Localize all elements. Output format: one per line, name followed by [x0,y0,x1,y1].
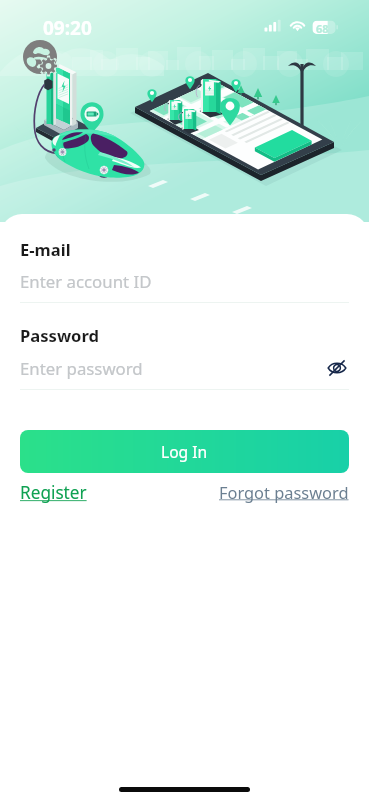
button[interactable]: Register [20,481,87,504]
button[interactable]: Log In [20,430,349,473]
staticText: E-mail [20,238,71,261]
button[interactable]: Enter account ID [20,270,349,293]
button[interactable]: Forgot password [219,481,349,503]
staticText: Enter account ID [20,270,152,293]
staticText: Password [20,324,100,347]
staticText: 09:20 [43,15,92,41]
staticText: Enter password [20,357,143,380]
button[interactable]: Show password [325,356,349,380]
staticText: Register [20,481,87,504]
staticText: Log In [161,441,208,462]
staticText: Forgot password [219,481,349,503]
staticText: 68 [316,21,329,36]
button[interactable]: Enter password [20,356,349,380]
